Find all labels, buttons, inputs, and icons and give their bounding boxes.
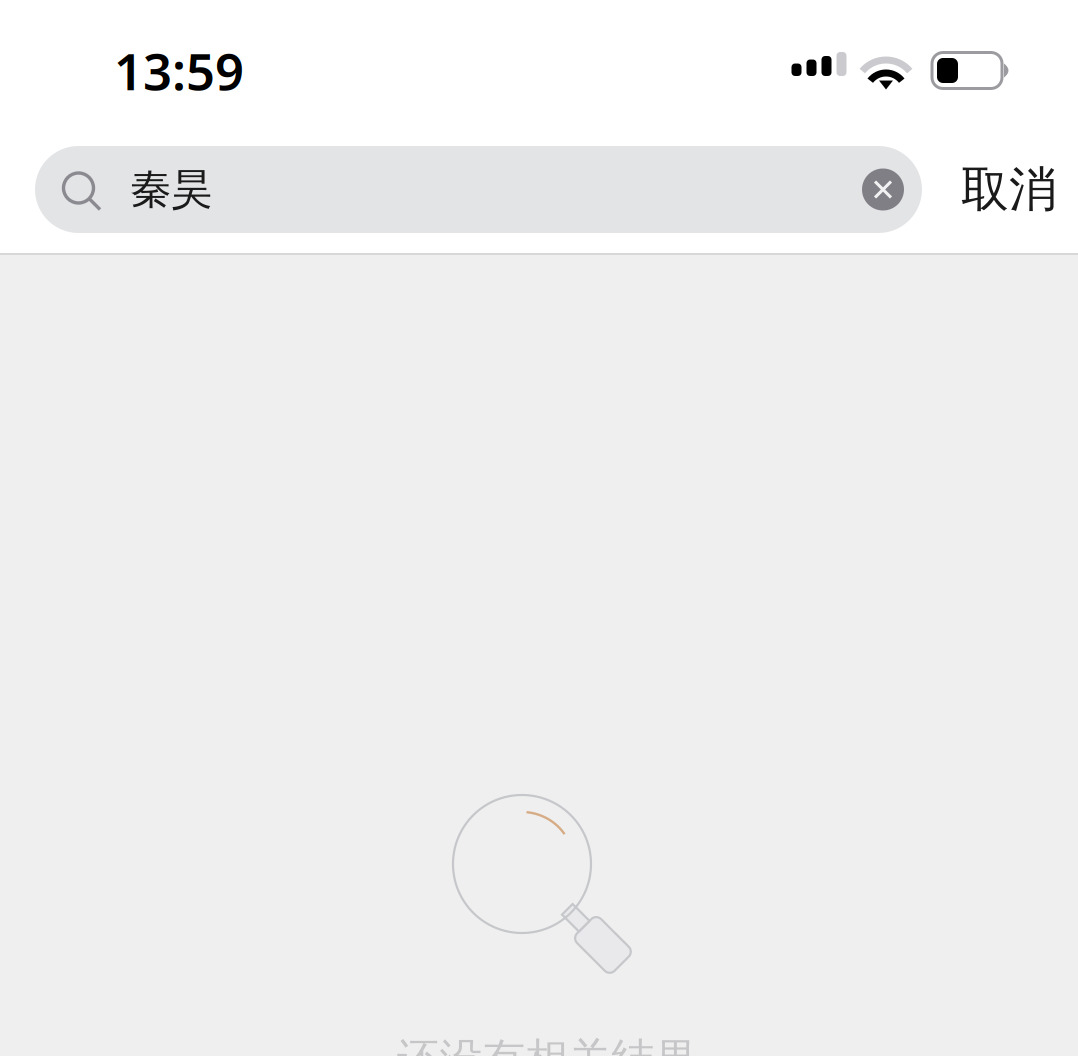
- staticText: 13:59: [114, 37, 244, 104]
- button[interactable]: 秦昊: [35, 146, 922, 233]
- button[interactable]: Clear text: [849, 155, 917, 223]
- staticText: 取消: [961, 160, 1057, 219]
- staticText: 还没有相关结果: [396, 1033, 697, 1056]
- button[interactable]: 取消: [922, 146, 1078, 233]
- staticText: 秦昊: [130, 164, 212, 215]
